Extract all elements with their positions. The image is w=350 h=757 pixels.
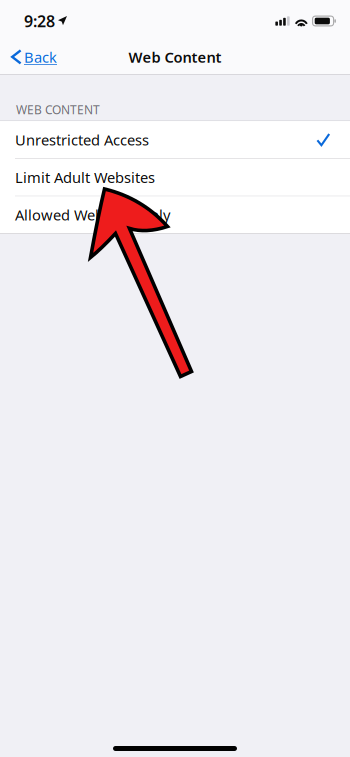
button[interactable]: Unrestricted Access bbox=[0, 121, 350, 158]
staticText: Back bbox=[24, 47, 57, 67]
staticText: Web Content bbox=[128, 47, 221, 67]
button[interactable]: Limit Adult Websites bbox=[0, 159, 350, 196]
staticText: Allowed Websites Only bbox=[15, 205, 170, 225]
button[interactable]: Back bbox=[5, 42, 63, 72]
staticText: Unrestricted Access bbox=[15, 130, 149, 149]
staticText: 9:28 bbox=[24, 10, 55, 32]
button[interactable]: Allowed Websites Only bbox=[0, 196, 350, 233]
staticText: Limit Adult Websites bbox=[15, 168, 155, 187]
staticText: WEB CONTENT bbox=[16, 102, 100, 118]
